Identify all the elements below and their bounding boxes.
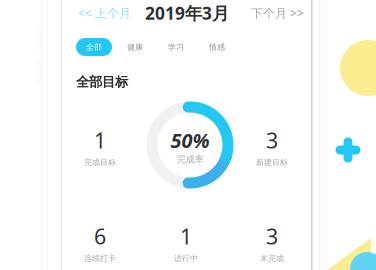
staticText: 完成目标 xyxy=(84,157,116,167)
button[interactable]: << 上个月 xyxy=(78,5,148,21)
button[interactable]: 下个月 >> xyxy=(238,5,304,21)
button[interactable]: 健康 xyxy=(115,38,155,56)
staticText: 新建目标 xyxy=(256,157,288,167)
staticText: 2019年3月 xyxy=(145,1,229,24)
staticText: 连续打卡 xyxy=(84,253,116,263)
staticText: 全部 xyxy=(86,42,102,52)
staticText: << 上个月 xyxy=(78,5,131,21)
staticText: 完成率 xyxy=(176,153,203,165)
staticText: 情感 xyxy=(209,42,225,52)
staticText: 3 xyxy=(266,222,278,250)
button[interactable]: 情感 xyxy=(197,38,237,56)
staticText: 1 xyxy=(94,126,106,154)
staticText: 学习 xyxy=(168,42,184,52)
button[interactable]: 学习 xyxy=(156,38,196,56)
staticText: 6 xyxy=(94,222,106,250)
staticText: 健康 xyxy=(127,42,143,52)
staticText: 未完成 xyxy=(260,253,284,263)
staticText: 进行中 xyxy=(174,253,198,263)
staticText: 下个月 >> xyxy=(251,5,304,21)
button[interactable]: 全部 xyxy=(76,38,112,56)
staticText: 3 xyxy=(266,126,278,154)
staticText: 全部目标 xyxy=(76,74,128,90)
staticText: 1 xyxy=(180,222,192,250)
staticText: 50% xyxy=(170,127,209,154)
